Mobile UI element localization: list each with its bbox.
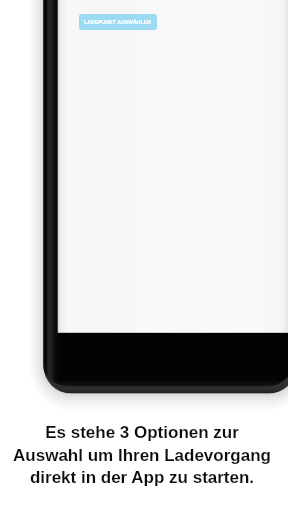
button[interactable]: LADEPUNKT AUSWÄHLEN bbox=[79, 14, 157, 30]
staticText: Es stehe 3 Optionen zur Auswahl um Ihren… bbox=[13, 423, 271, 486]
staticText: LADEPUNKT AUSWÄHLEN bbox=[84, 19, 152, 25]
